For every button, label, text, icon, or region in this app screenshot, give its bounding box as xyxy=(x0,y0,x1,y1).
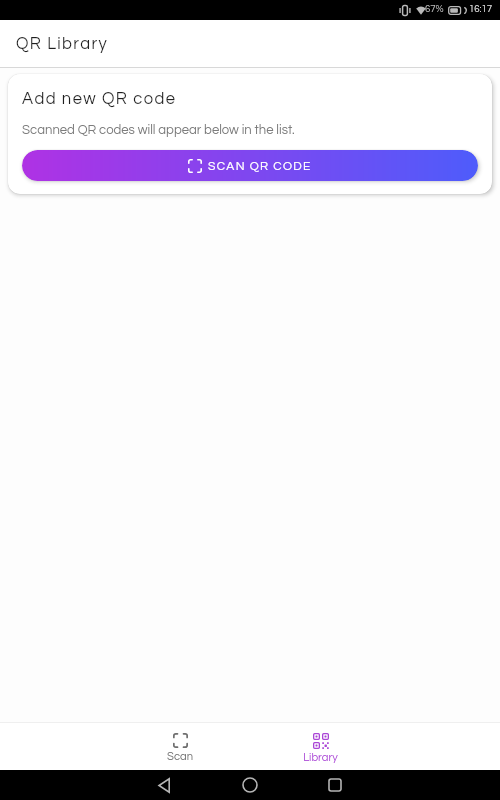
staticText: Scanned QR codes will appear below in th… xyxy=(22,123,295,136)
button[interactable]: Recents xyxy=(328,778,342,792)
staticText: Library xyxy=(303,752,338,764)
button[interactable]: SCAN QR CODE xyxy=(22,150,478,181)
button[interactable]: Scan xyxy=(110,723,250,770)
button[interactable]: Library xyxy=(250,723,390,770)
staticText: Add new QR code xyxy=(22,90,177,107)
staticText: QR Library xyxy=(16,35,109,52)
staticText: SCAN QR CODE xyxy=(208,160,312,172)
button[interactable]: Back xyxy=(158,778,170,793)
staticText: 67% xyxy=(425,4,444,14)
staticText: Scan xyxy=(167,751,193,763)
staticText: 16:17 xyxy=(469,4,493,14)
button[interactable]: Home xyxy=(242,777,258,793)
